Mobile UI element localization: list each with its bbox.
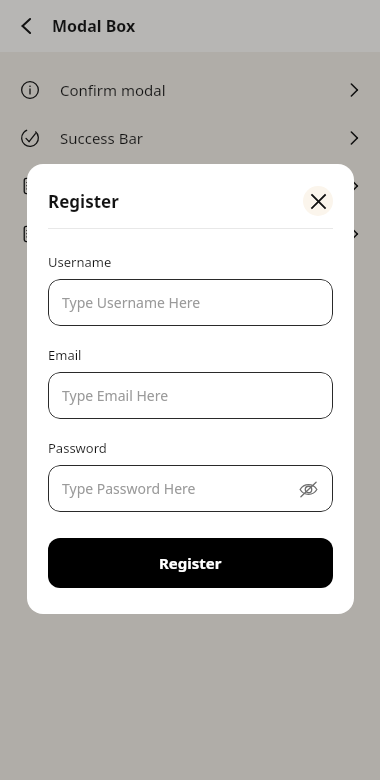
staticText: Success Bar [60, 128, 143, 148]
button[interactable]: Bottom Sheet [0, 162, 380, 210]
button[interactable]: Back [10, 9, 44, 43]
button[interactable]: Type Password Here [48, 465, 333, 512]
staticText: Password [48, 439, 107, 457]
staticText: Type Email Here [62, 386, 169, 405]
staticText: Confirm modal [60, 80, 166, 100]
button[interactable]: Type Email Here [48, 372, 333, 419]
staticText: Username [48, 253, 112, 271]
button[interactable]: Type Username Here [48, 279, 333, 326]
staticText: Type Username Here [62, 293, 201, 312]
staticText: Email [48, 346, 82, 364]
staticText: Register [48, 190, 119, 213]
staticText: Modal Box [52, 15, 136, 37]
button[interactable]: Register [48, 538, 333, 588]
button[interactable]: Confirm modal [0, 66, 380, 114]
staticText: Form Modal [60, 224, 146, 244]
button[interactable]: Success Bar [0, 114, 380, 162]
staticText: Register [159, 553, 222, 573]
staticText: Bottom Sheet [60, 176, 157, 196]
button[interactable]: Close [303, 186, 333, 216]
button[interactable]: Form Modal [0, 210, 380, 258]
staticText: Type Password Here [62, 479, 196, 498]
button[interactable]: Show password [297, 478, 319, 500]
